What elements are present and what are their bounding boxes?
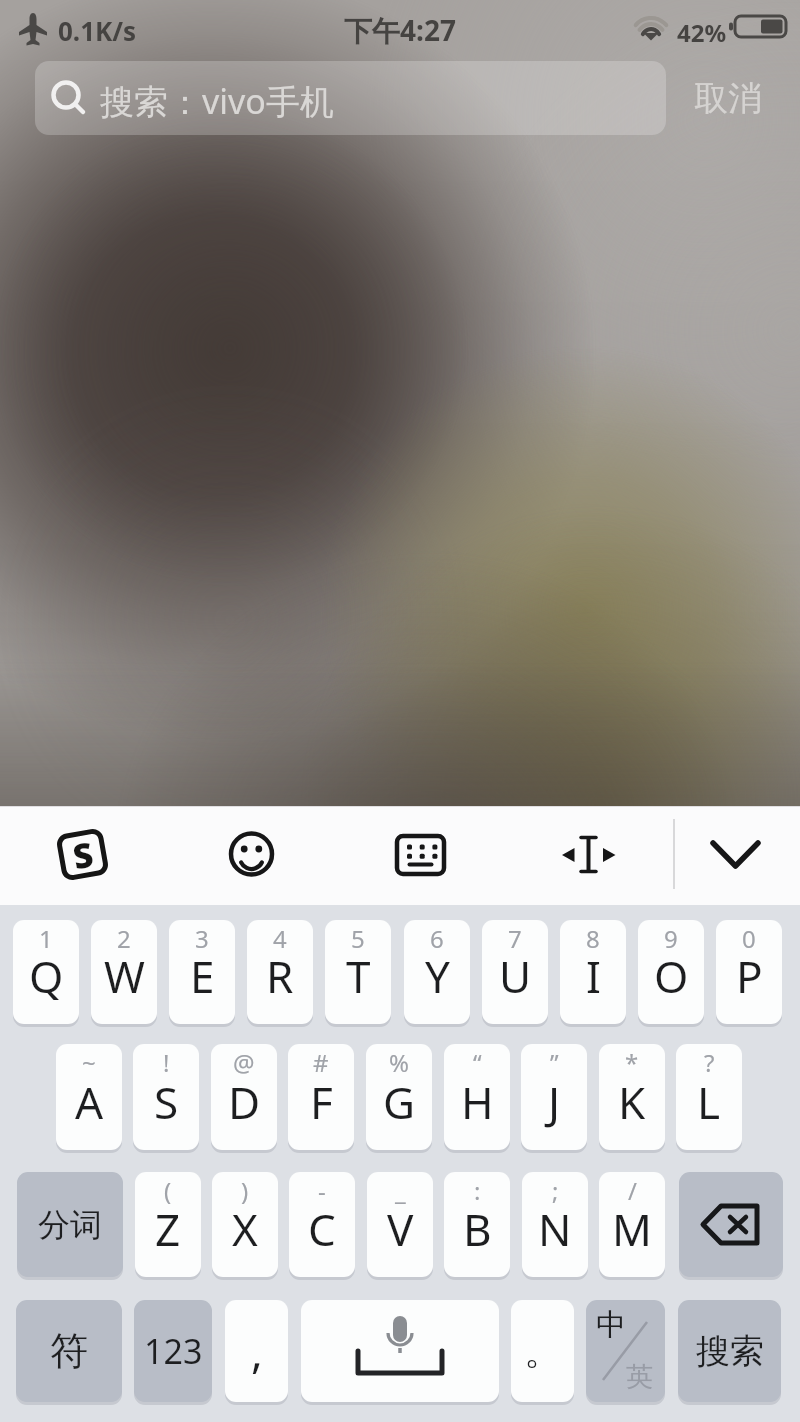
button[interactable] (706, 828, 766, 882)
staticText: 5 (351, 922, 365, 955)
button[interactable]: ! (133, 1044, 199, 1150)
button[interactable] (558, 828, 620, 882)
staticText: ~ (82, 1046, 96, 1079)
button[interactable]: 0 (716, 920, 782, 1024)
staticText: 0.1K/s (58, 13, 137, 48)
button[interactable]: % (366, 1044, 432, 1150)
button[interactable] (301, 1300, 499, 1402)
button[interactable] (225, 828, 279, 882)
button[interactable]: 中 (586, 1300, 665, 1402)
staticText: 2 (117, 922, 131, 955)
staticText: C (308, 1199, 336, 1259)
staticText: 123 (144, 1328, 203, 1374)
staticText: F (310, 1072, 333, 1132)
button[interactable]: : (444, 1172, 510, 1277)
button[interactable]: 4 (247, 920, 313, 1024)
staticText: 下午4:27 (344, 11, 456, 45)
button[interactable]: ~ (56, 1044, 122, 1150)
staticText: W (104, 946, 145, 1006)
staticText: M (612, 1199, 652, 1259)
staticText: S (154, 1072, 179, 1132)
button[interactable]: ; (522, 1172, 588, 1277)
staticText: 搜索 (696, 1330, 764, 1373)
staticText: * (625, 1046, 639, 1079)
staticText: ” (550, 1046, 559, 1079)
staticText: D (228, 1072, 261, 1132)
staticText: H (461, 1072, 494, 1132)
staticText: V (387, 1199, 414, 1259)
button[interactable]: # (288, 1044, 354, 1150)
staticText: K (618, 1072, 646, 1132)
staticText: X (232, 1199, 258, 1259)
staticText: B (463, 1199, 492, 1259)
staticText: E (190, 946, 215, 1006)
staticText: 中 (596, 1306, 626, 1344)
staticText: T (346, 946, 371, 1006)
staticText: 取消 (694, 77, 762, 120)
button[interactable]: _ (367, 1172, 433, 1277)
staticText: % (389, 1046, 409, 1079)
button[interactable]: 123 (134, 1300, 212, 1402)
button[interactable]: 8 (560, 920, 626, 1024)
staticText: 搜索：vivo手机 (100, 78, 334, 124)
button[interactable]: S (55, 827, 110, 882)
staticText: 4 (273, 922, 287, 955)
staticText: ? (704, 1046, 715, 1079)
staticText: R (266, 946, 294, 1006)
staticText: 。 (524, 1327, 562, 1375)
staticText: Y (425, 946, 450, 1006)
button[interactable]: 搜索 (678, 1300, 781, 1402)
button[interactable]: 2 (91, 920, 157, 1024)
staticText: N (538, 1199, 572, 1259)
button[interactable]: ) (212, 1172, 278, 1277)
button[interactable]: * (599, 1044, 665, 1150)
button[interactable]: 3 (169, 920, 235, 1024)
staticText: ( (164, 1174, 172, 1207)
staticText: 9 (664, 922, 678, 955)
staticText: 3 (195, 922, 209, 955)
staticText: “ (473, 1046, 482, 1079)
staticText: - (318, 1174, 326, 1207)
staticText: # (313, 1046, 329, 1079)
button[interactable]: 1 (13, 920, 79, 1024)
button[interactable]: 5 (325, 920, 391, 1024)
button[interactable]: ( (135, 1172, 201, 1277)
button[interactable]: 9 (638, 920, 704, 1024)
button[interactable]: 7 (482, 920, 548, 1024)
button[interactable]: 6 (404, 920, 470, 1024)
staticText: L (697, 1072, 721, 1132)
button[interactable]: 取消 (680, 66, 776, 130)
staticText: Z (155, 1199, 181, 1259)
button[interactable]: ? (676, 1044, 742, 1150)
staticText: 1 (39, 922, 53, 955)
button[interactable]: , (225, 1300, 288, 1402)
staticText: ; (552, 1174, 559, 1207)
staticText: P (736, 946, 763, 1006)
staticText: 42% (677, 16, 727, 49)
staticText: 8 (586, 922, 600, 955)
staticText: 英 (626, 1360, 653, 1394)
button[interactable]: “ (444, 1044, 510, 1150)
button[interactable]: 搜索：vivo手机 (35, 61, 666, 135)
staticText: 7 (508, 922, 522, 955)
button[interactable]: / (599, 1172, 665, 1277)
staticText: S (69, 830, 97, 879)
button[interactable] (679, 1172, 783, 1277)
button[interactable]: @ (211, 1044, 277, 1150)
staticText: J (548, 1072, 561, 1132)
staticText: U (499, 946, 532, 1006)
button[interactable]: 。 (511, 1300, 574, 1402)
button[interactable]: - (289, 1172, 355, 1277)
button[interactable]: 分词 (17, 1172, 123, 1277)
button[interactable]: 符 (16, 1300, 122, 1402)
staticText: ) (241, 1174, 249, 1207)
staticText: ! (163, 1046, 170, 1079)
staticText: / (628, 1174, 637, 1207)
staticText: 0 (742, 922, 756, 955)
button[interactable] (392, 828, 448, 882)
staticText: 符 (50, 1327, 88, 1375)
staticText: _ (395, 1174, 406, 1207)
staticText: O (654, 946, 689, 1006)
button[interactable]: ” (521, 1044, 587, 1150)
staticText: 6 (430, 922, 444, 955)
